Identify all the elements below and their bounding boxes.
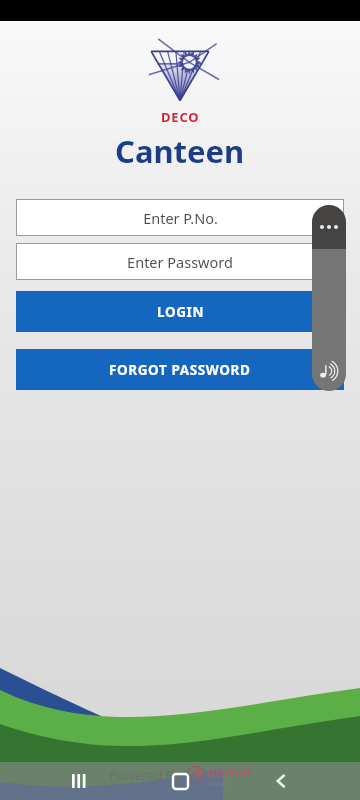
staticText: DECO (161, 108, 200, 126)
button[interactable]: Floating assistant (312, 205, 346, 391)
staticText: Enter P.No. (143, 208, 218, 228)
button[interactable]: Home (163, 764, 197, 798)
staticText: Powered By (109, 766, 185, 784)
button[interactable]: Back (264, 764, 298, 798)
button[interactable]: LOGIN (16, 291, 344, 332)
staticText: anmol (207, 762, 252, 781)
staticText: LOGIN (157, 303, 204, 321)
button[interactable]: Enter Password (16, 243, 344, 280)
staticText: Enter Password (127, 252, 233, 272)
button[interactable]: Recents (62, 764, 96, 798)
staticText: FORGOT PASSWORD (109, 361, 251, 379)
staticText: infomatics (207, 781, 232, 788)
button[interactable]: Enter P.No. (16, 199, 344, 236)
staticText: Canteen (115, 130, 245, 172)
button[interactable]: FORGOT PASSWORD (16, 349, 344, 390)
